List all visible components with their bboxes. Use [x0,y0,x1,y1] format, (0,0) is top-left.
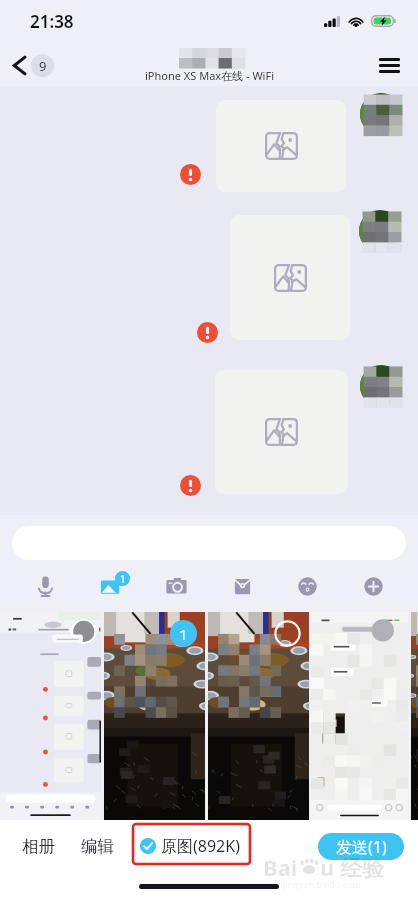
button[interactable]: Resend [180,164,201,185]
button[interactable]: Photo of food, selected [104,612,205,821]
staticText: iPhone XS Max在线 - WiFi [145,68,274,83]
staticText: 编辑 [81,836,114,857]
button[interactable]: Image failed to load [216,100,346,192]
button[interactable]: 相册 [16,828,61,865]
button[interactable]: Resend [197,322,218,343]
button[interactable]: 发送(1) [318,833,404,860]
button[interactable]: Resend [180,475,201,496]
button[interactable]: Chat screenshot [311,612,408,821]
button[interactable]: Photos [91,569,131,603]
staticText: 1 [179,624,188,644]
staticText: 21:38 [30,10,74,33]
staticText: Bai [263,852,298,882]
staticText: 原图(892K) [161,835,240,857]
staticText: u 经验 [320,852,385,882]
button[interactable]: Screenshot photo [0,612,101,821]
button[interactable]: Photo of food [208,612,309,821]
button[interactable]: Image failed to load [215,370,348,494]
button[interactable]: 编辑 [75,828,120,865]
button[interactable]: 原图(892K) [136,827,244,865]
button[interactable]: More [353,569,393,603]
staticText: 9 [39,57,47,75]
button[interactable]: Emoji [287,569,327,603]
button[interactable]: Image failed to load [230,215,350,340]
button[interactable]: Voice message [25,569,65,603]
staticText: 相册 [22,836,55,857]
button[interactable]: Camera [156,569,196,603]
button[interactable]: Menu [372,48,406,82]
button[interactable]: Red packet [222,569,262,603]
staticText: 发送(1) [336,836,387,858]
staticText: jingyan.baidu.com [283,878,361,890]
button[interactable]: Back, 9 unread [13,54,58,77]
staticText: 1 [120,572,126,586]
